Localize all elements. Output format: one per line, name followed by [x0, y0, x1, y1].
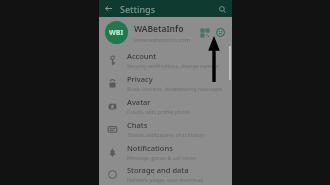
- staticText: Account: [127, 51, 157, 61]
- staticText: Create, edit, profile photo: [127, 108, 190, 115]
- staticText: Storage and data: [127, 165, 189, 175]
- button[interactable]: Privacy: [99, 71, 232, 94]
- button[interactable]: Status: [214, 26, 227, 39]
- button[interactable]: Notifications: [99, 140, 232, 163]
- staticText: Message, group & call tones: [127, 154, 196, 161]
- staticText: WABetaInfo: [134, 23, 184, 35]
- button[interactable]: Back: [103, 3, 114, 14]
- staticText: Notifications: [127, 143, 173, 153]
- button[interactable]: Chats: [99, 117, 232, 140]
- staticText: Block contacts, disappearing messages: [127, 85, 223, 92]
- staticText: Security notifications, change number: [127, 62, 220, 69]
- button[interactable]: Storage and data: [99, 163, 232, 185]
- staticText: WBI: [109, 28, 124, 38]
- button[interactable]: Avatar: [99, 94, 232, 117]
- staticText: www.wabetainfo.com: [134, 36, 190, 43]
- staticText: Network usage, auto download: [127, 176, 204, 183]
- staticText: Theme, wallpapers, chat history: [127, 131, 205, 138]
- button[interactable]: Search: [216, 3, 228, 15]
- staticText: Privacy: [127, 74, 153, 84]
- button[interactable]: Account: [99, 48, 232, 71]
- staticText: Chats: [127, 120, 148, 130]
- staticText: Settings: [120, 3, 156, 15]
- staticText: Avatar: [127, 97, 151, 107]
- button[interactable]: QR code: [198, 26, 211, 39]
- button[interactable]: WBI: [99, 17, 232, 48]
